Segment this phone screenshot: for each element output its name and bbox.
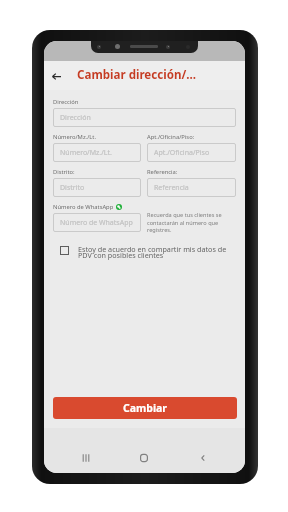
button[interactable]: Número de WhatsApp xyxy=(53,213,141,232)
staticText: Número/Mz./Lt. xyxy=(53,133,96,141)
staticText: Número/Mz./Lt. xyxy=(60,148,112,158)
button[interactable]: Número/Mz./Lt. xyxy=(53,143,141,162)
staticText: Apt./Oficina/Piso: xyxy=(147,133,195,141)
staticText: Número de WhatsApp xyxy=(53,203,114,211)
staticText: Recuerda que tus clientes se contactarán… xyxy=(147,211,236,233)
staticText: Referencia xyxy=(154,183,189,193)
button[interactable]: Referencia xyxy=(147,178,236,197)
staticText: Apt./Oficina/Piso xyxy=(154,148,210,158)
staticText: Dirección xyxy=(53,98,79,106)
button[interactable]: Dirección xyxy=(53,108,236,127)
staticText: Número de WhatsApp xyxy=(60,218,133,228)
staticText: Distrito: xyxy=(53,168,75,176)
staticText: Distrito xyxy=(60,183,85,193)
staticText: Referencia: xyxy=(147,168,178,176)
staticText: Estoy de acuerdo en compartir mis datos … xyxy=(78,244,230,261)
button[interactable]: Home xyxy=(135,449,153,467)
button[interactable]: Apt./Oficina/Piso xyxy=(147,143,236,162)
button[interactable]: Distrito xyxy=(53,178,141,197)
button[interactable]: Estoy de acuerdo en compartir mis datos … xyxy=(53,244,236,261)
staticText: Cambiar xyxy=(123,401,168,415)
staticText: Cambiar dirección/... xyxy=(77,67,197,83)
button[interactable]: Back xyxy=(47,67,65,85)
button[interactable]: Cambiar xyxy=(53,397,237,419)
button[interactable]: Recent apps xyxy=(77,449,95,467)
button[interactable]: Back xyxy=(194,449,212,467)
staticText: Dirección xyxy=(60,113,91,123)
